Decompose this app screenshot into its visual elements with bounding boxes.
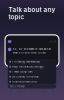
staticText: Give me a fresh idea bbox=[12, 80, 36, 83]
button[interactable]: Give me a fresh idea bbox=[8, 79, 56, 84]
button[interactable]: Let's reflect on my day bbox=[8, 74, 56, 79]
staticText: So, do you want to talk about bbox=[13, 48, 51, 51]
staticText: Type a message bbox=[9, 85, 24, 88]
button[interactable]: Help me think this through bbox=[8, 64, 56, 69]
staticText: I need a pep talk bbox=[12, 70, 32, 73]
staticText: Talk about any topic bbox=[8, 6, 55, 21]
staticText: Help me think this through bbox=[12, 65, 43, 68]
button[interactable]: I need a pep talk bbox=[8, 69, 56, 74]
staticText: I'm feeling overwhelmed bbox=[12, 60, 40, 63]
staticText: what's on your mind today? bbox=[13, 51, 46, 54]
staticText: Let's reflect on my day bbox=[12, 75, 38, 78]
button[interactable]: I'm feeling overwhelmed bbox=[8, 59, 56, 64]
